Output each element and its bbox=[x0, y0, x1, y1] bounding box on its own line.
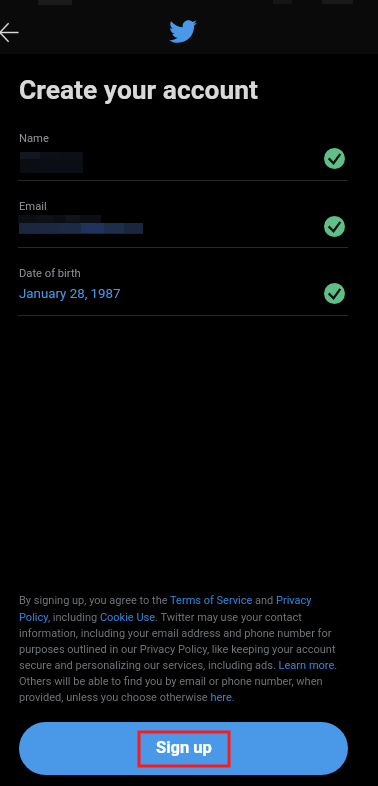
button[interactable]: Back bbox=[0, 11, 29, 53]
staticText: Email bbox=[19, 200, 47, 213]
staticText: Name bbox=[19, 132, 49, 145]
staticText: January 28, 1987 bbox=[19, 286, 121, 302]
staticText: Create your account bbox=[19, 75, 258, 106]
button[interactable]: Sign up bbox=[19, 722, 348, 775]
staticText: By signing up, you agree to the Terms of… bbox=[19, 594, 344, 704]
staticText: Sign up bbox=[156, 738, 212, 757]
staticText: Date of birth bbox=[19, 267, 81, 280]
